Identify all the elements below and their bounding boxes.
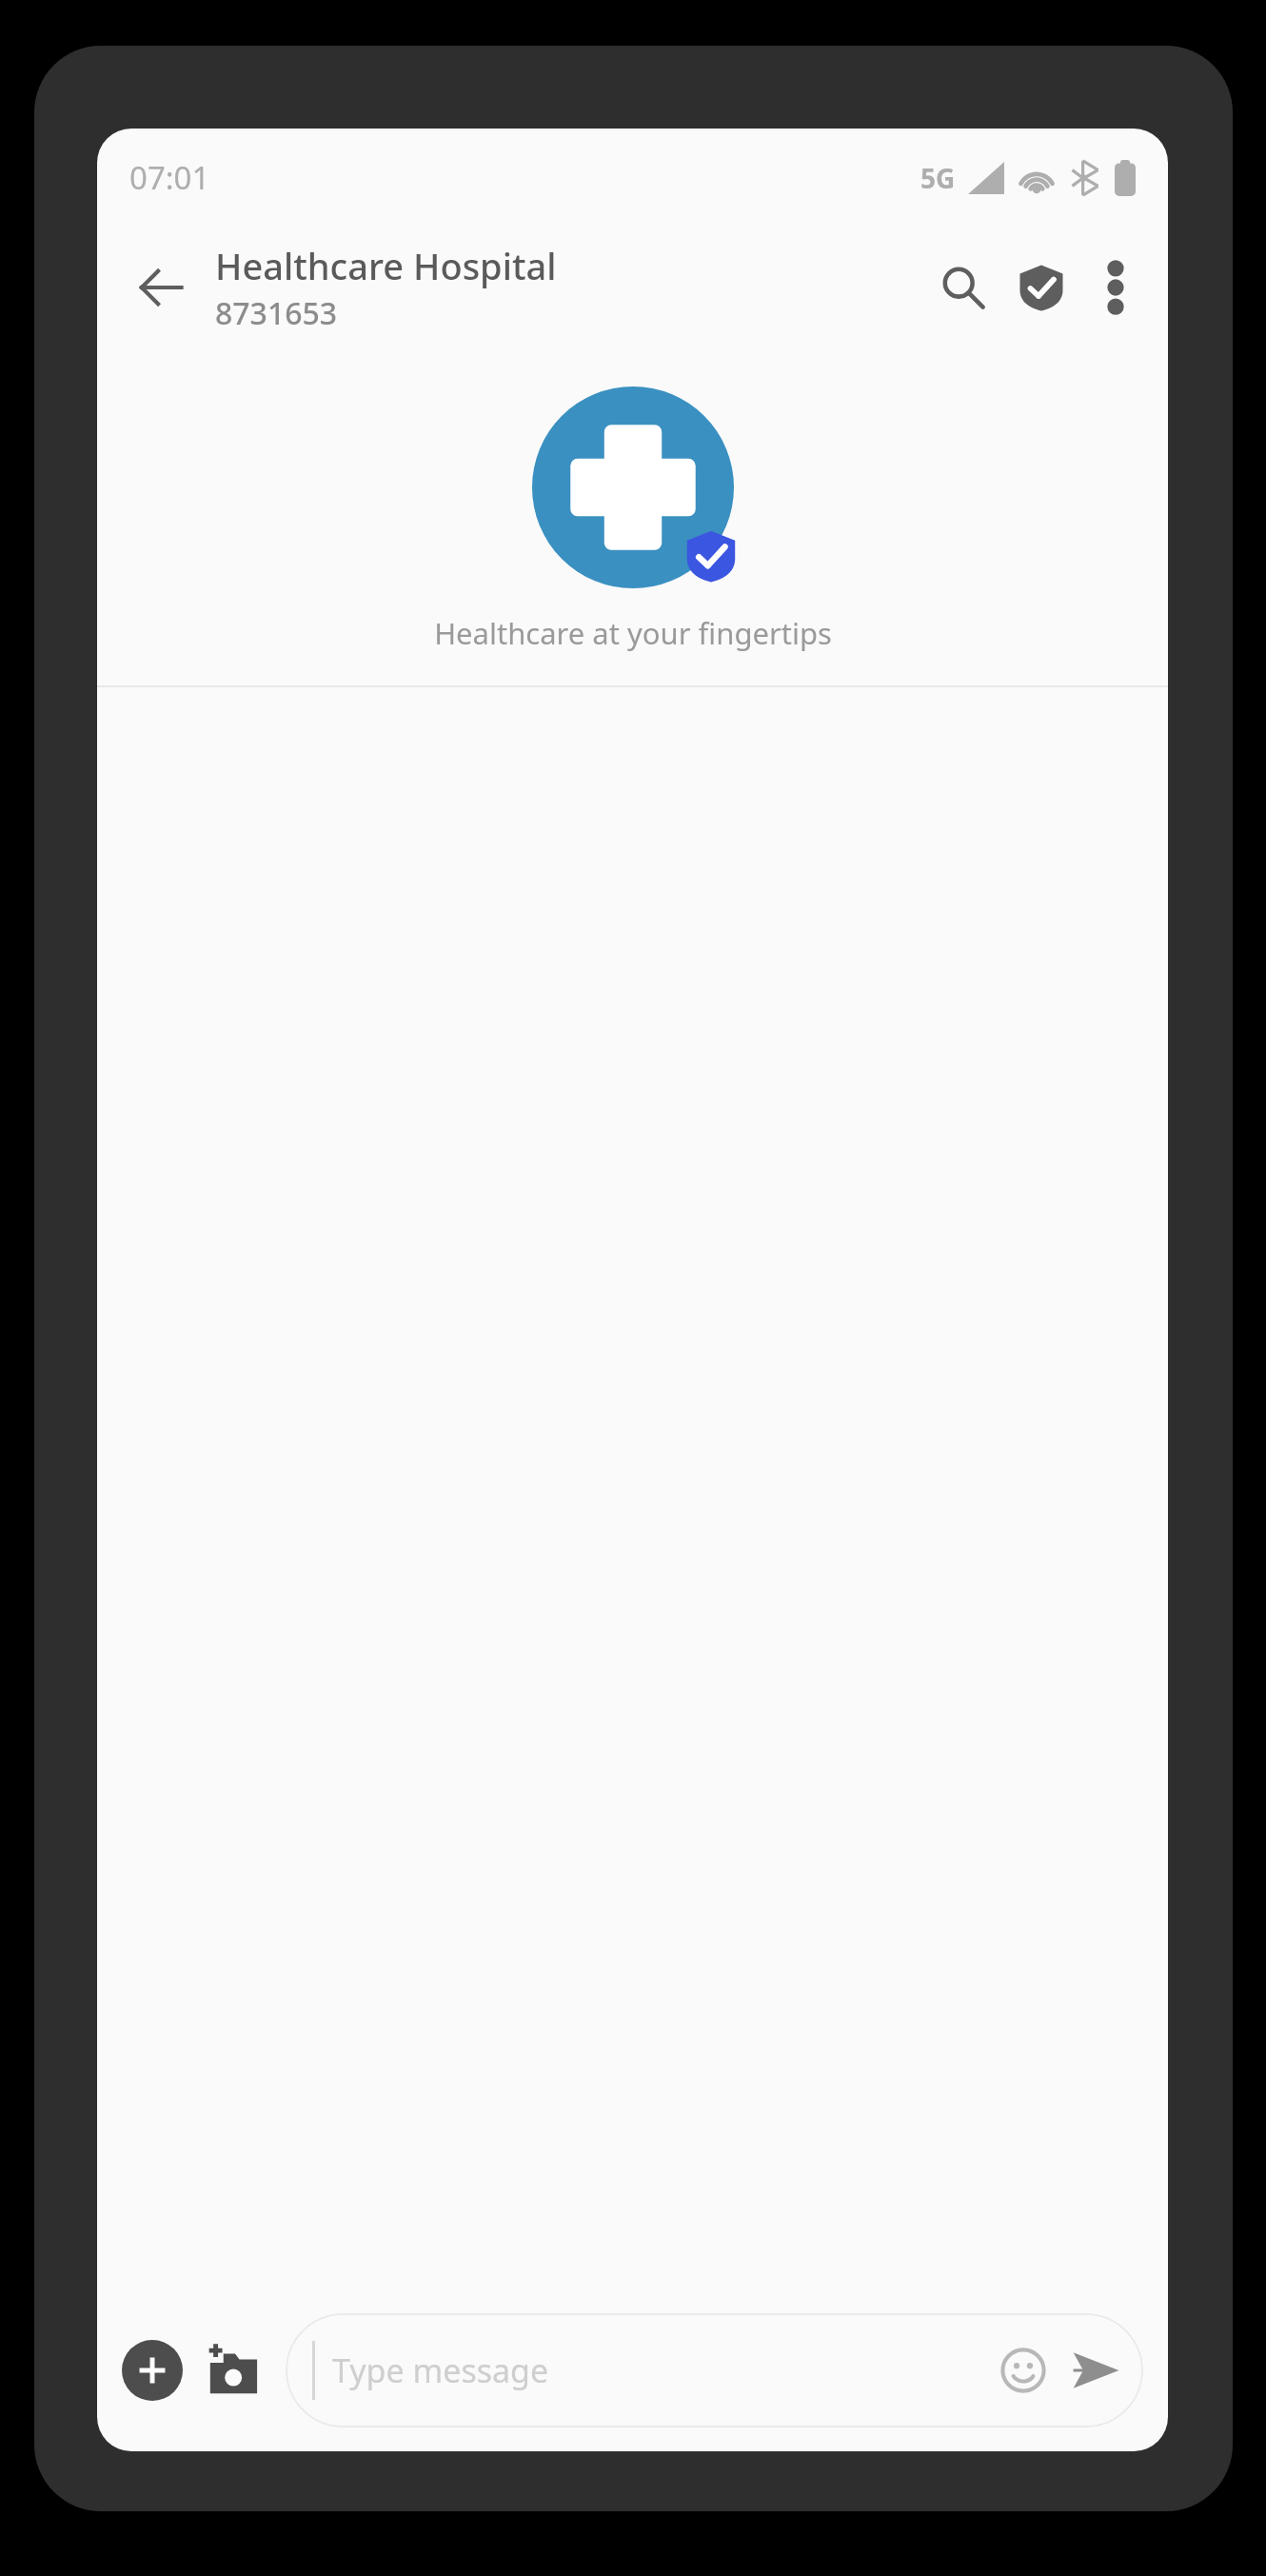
- staticText: Healthcare at your fingertips: [434, 613, 832, 653]
- button[interactable]: Verified: [1002, 248, 1080, 327]
- staticText: Healthcare Hospital: [215, 241, 557, 290]
- button[interactable]: Emoji: [991, 2338, 1056, 2403]
- button[interactable]: Send: [1061, 2336, 1130, 2405]
- button[interactable]: Take photo: [198, 2336, 267, 2405]
- button[interactable]: Healthcare Hospital profile photo: [532, 386, 734, 588]
- staticText: 5G: [920, 160, 956, 196]
- button[interactable]: More options: [1080, 252, 1151, 323]
- button[interactable]: Search: [924, 248, 1002, 327]
- button[interactable]: Back: [120, 247, 202, 328]
- staticText: 07:01: [129, 156, 210, 199]
- button[interactable]: Add attachment: [122, 2340, 183, 2401]
- button[interactable]: Healthcare Hospital: [215, 241, 924, 334]
- staticText: 8731653: [215, 292, 338, 334]
- button[interactable]: Type message: [286, 2313, 1143, 2427]
- staticText: Type message: [332, 2348, 991, 2392]
